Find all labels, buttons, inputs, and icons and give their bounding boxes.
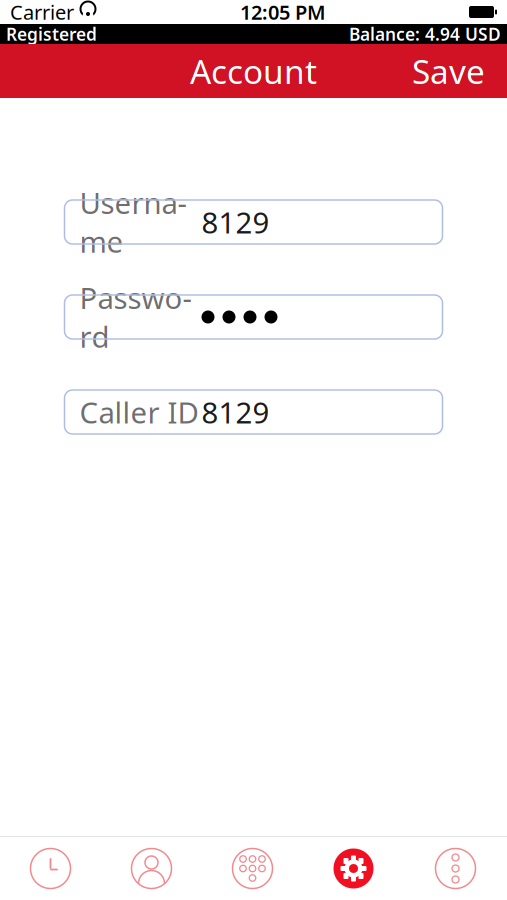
staticText: Account (190, 49, 317, 93)
staticText: Balance: 4.94 USD (349, 22, 501, 45)
button[interactable]: Keypad (202, 837, 303, 899)
button[interactable]: Settings (303, 837, 404, 899)
staticText: Username (79, 183, 186, 261)
button[interactable]: More (404, 837, 507, 899)
button[interactable]: Username (64, 200, 442, 244)
staticText: Password (79, 278, 191, 356)
button[interactable]: Caller ID (64, 390, 442, 434)
staticText: Save (412, 49, 485, 93)
staticText: Carrier (10, 0, 74, 25)
staticText: 8129 (201, 392, 269, 431)
staticText: 8129 (201, 202, 269, 241)
button[interactable]: Save (398, 37, 499, 105)
button[interactable]: Password (64, 295, 442, 339)
staticText: 12:05 PM (240, 0, 326, 25)
staticText: Registered (6, 22, 97, 45)
button[interactable]: Recents (0, 837, 101, 899)
button[interactable]: Contacts (101, 837, 202, 899)
staticText: Caller ID (79, 392, 198, 431)
